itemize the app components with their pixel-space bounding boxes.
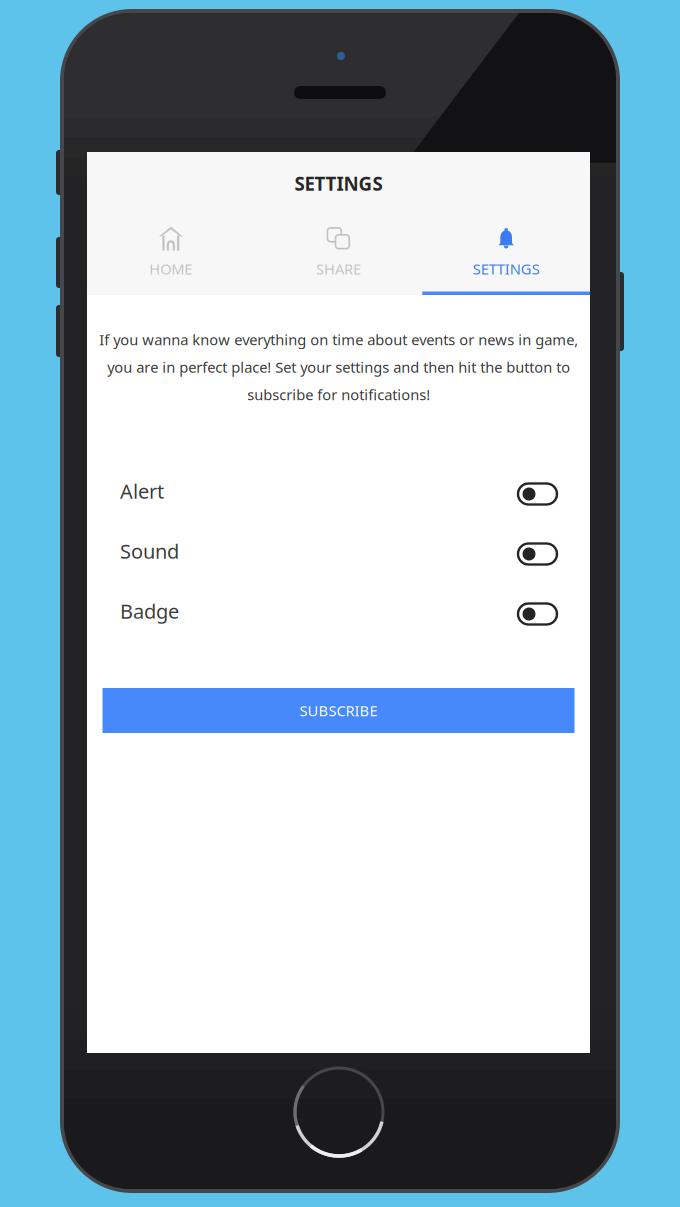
- button[interactable]: SHARE: [255, 207, 422, 295]
- button[interactable]: Sound: [87, 524, 590, 584]
- staticText: SETTINGS: [473, 259, 540, 278]
- button[interactable]: Badge: [87, 584, 590, 644]
- button[interactable]: SETTINGS: [422, 207, 590, 295]
- staticText: If you wanna know everything on time abo…: [99, 330, 578, 404]
- staticText: SHARE: [316, 259, 361, 278]
- button[interactable]: SUBSCRIBE: [102, 688, 574, 733]
- staticText: SUBSCRIBE: [299, 701, 377, 720]
- staticText: Alert: [120, 478, 164, 504]
- staticText: HOME: [149, 259, 192, 278]
- staticText: SETTINGS: [294, 171, 382, 196]
- button[interactable]: HOME: [87, 207, 255, 295]
- staticText: Sound: [120, 538, 179, 564]
- button[interactable]: Alert: [87, 464, 590, 524]
- staticText: Badge: [120, 598, 179, 624]
